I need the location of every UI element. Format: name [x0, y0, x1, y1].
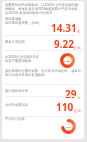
- staticText: 9.22: [54, 37, 74, 51]
- button[interactable]: 29: [0, 87, 81, 101]
- staticText: 亿元: [74, 109, 81, 113]
- staticText: 预备计划交易: [5, 40, 49, 44]
- staticText: 75%: [66, 125, 71, 128]
- button[interactable]: 9.22: [0, 37, 81, 51]
- staticText: 天: [77, 96, 81, 100]
- button[interactable]: 100%: [60, 53, 75, 68]
- staticText: 合计完成量沉淀: [5, 103, 49, 107]
- staticText: 设计项目进行度: [5, 89, 49, 93]
- staticText: 某次局面综合量完成量，自计算未完成比率，涵盖日统计完成月度项目各项数据。: [5, 69, 81, 77]
- staticText: 110: [56, 100, 74, 114]
- staticText: 亿元: [74, 46, 81, 50]
- button[interactable]: 110: [0, 100, 81, 114]
- staticText: 天: [77, 30, 81, 34]
- staticText: 14.31: [51, 21, 77, 35]
- staticText: 100%: [64, 59, 71, 62]
- button[interactable]: 14.31: [0, 21, 81, 35]
- staticText: 平均合计比率: [5, 117, 49, 121]
- staticText: 29: [65, 87, 77, 101]
- staticText: 周度事项数 每日预定发放量（含税）: [5, 17, 49, 25]
- staticText: 此2025年当年项目月度 结算子量发布数据: [5, 54, 49, 63]
- staticText: 某重要指标的说明数据，以2025年全年各项项目数据概览、整体各项专项规划建设发展…: [5, 2, 81, 15]
- button[interactable]: 75%: [61, 119, 76, 134]
